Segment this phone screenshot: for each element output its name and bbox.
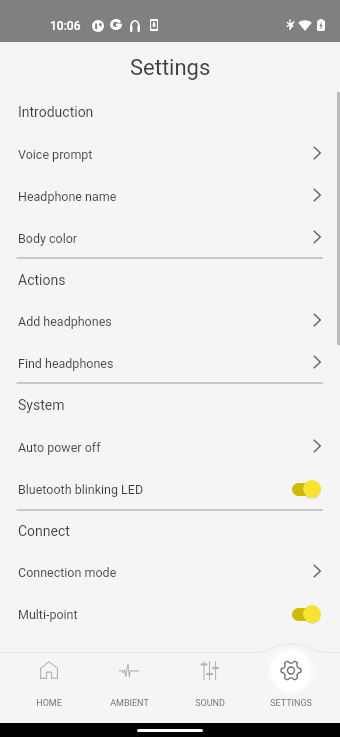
other: Settings [281, 660, 301, 681]
button[interactable]: Headphone name [0, 175, 340, 217]
staticText: Headphone name [18, 189, 313, 204]
button[interactable]: Find headphones [0, 342, 340, 384]
staticText: System [18, 397, 65, 413]
button[interactable]: Body color [0, 217, 340, 259]
button[interactable]: Connection mode [0, 551, 340, 593]
button[interactable]: Home [9, 645, 89, 723]
staticText: HOME [36, 698, 62, 709]
staticText: Connect [18, 523, 70, 539]
staticText: Voice prompt [18, 147, 313, 162]
staticText: 10:06 [50, 19, 81, 33]
button[interactable]: Bluetooth blinking LED [0, 468, 340, 510]
staticText: Add headphones [18, 314, 313, 329]
staticText: Actions [18, 272, 66, 288]
button[interactable]: Auto power off [0, 426, 340, 468]
staticText: Settings [130, 55, 211, 81]
staticText: Introduction [18, 104, 94, 120]
staticText: Body color [18, 231, 313, 246]
other: Ambient [119, 664, 139, 677]
staticText: SOUND [195, 698, 225, 709]
other: Sound [201, 661, 218, 680]
button[interactable]: Voice prompt [0, 133, 340, 175]
staticText: Bluetooth blinking LED [18, 482, 292, 497]
button[interactable]: Sound [169, 645, 250, 723]
staticText: Multi-point [18, 607, 292, 622]
staticText: AMBIENT [110, 698, 149, 709]
staticText: SETTINGS [270, 698, 312, 709]
button[interactable]: Settings [250, 645, 331, 723]
staticText: Auto power off [18, 440, 313, 455]
button[interactable]: Add headphones [0, 300, 340, 342]
other: Home [40, 661, 58, 679]
button[interactable]: Ambient [89, 645, 169, 723]
staticText: Connection mode [18, 565, 313, 580]
staticText: Find headphones [18, 356, 313, 371]
button[interactable]: Multi-point [0, 593, 340, 635]
